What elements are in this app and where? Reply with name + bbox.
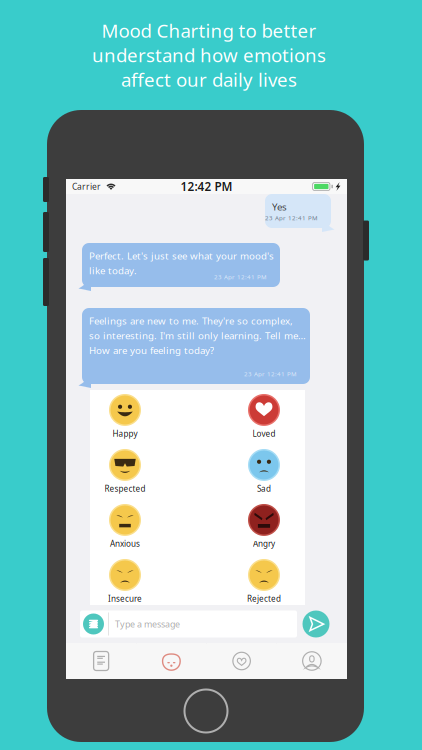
staticText: like today. [89,264,137,277]
button[interactable]: Sad [229,448,299,495]
button[interactable]: Rejected [229,558,299,605]
button[interactable]: Respected [90,448,160,495]
staticText: affect our daily lives [121,67,297,92]
staticText: 23 Apr 12:41 PM [214,273,267,281]
staticText: understand how emotions [92,42,326,68]
staticText: so interesting. I'm still only learning.… [89,329,306,342]
button[interactable]: Favourites [206,643,277,679]
button[interactable]: Happy [90,393,160,440]
button[interactable]: Journal [66,643,136,679]
staticText: Carrier [72,181,101,192]
staticText: 23 Apr 12:41 PM [265,214,318,222]
button[interactable]: Mood [136,643,206,679]
staticText: 12:42 PM [180,178,232,194]
staticText: Insecure [108,593,142,604]
staticText: Yes [272,200,287,213]
button[interactable]: Loved [229,393,299,440]
staticText: Type a message [115,618,180,630]
staticText: Mood Charting to better [101,18,316,43]
staticText: Happy [112,428,137,439]
staticText: How are you feeling today? [89,343,214,357]
staticText: Angry [253,538,275,549]
button[interactable]: Profile [277,643,347,679]
button[interactable]: Anxious [90,503,160,550]
staticText: Feelings are new to me. They're so compl… [89,314,293,327]
button[interactable]: Insecure [90,558,160,605]
staticText: Rejected [247,593,281,604]
staticText: Anxious [110,538,140,549]
staticText: 23 Apr 12:41 PM [244,370,297,378]
button[interactable]: Angry [229,503,299,550]
staticText: Sad [257,483,271,494]
button[interactable]: Send [302,610,329,637]
staticText: Respected [104,483,145,494]
staticText: Perfect. Let's just see what your mood's [89,249,274,262]
staticText: Loved [252,428,275,439]
